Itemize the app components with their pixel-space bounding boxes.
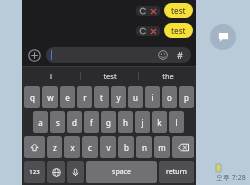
button[interactable]: x [64, 136, 80, 158]
staticText: v [106, 142, 111, 153]
staticText: f [90, 117, 93, 128]
staticText: test [171, 25, 186, 36]
button[interactable]: Shift [24, 136, 45, 158]
staticText: m [158, 142, 166, 153]
staticText: s [56, 117, 60, 128]
staticText: k [157, 117, 162, 128]
button[interactable]: Open chat bubble [210, 24, 236, 50]
staticText: the [162, 71, 174, 81]
staticText: return [166, 167, 187, 177]
button[interactable]: Add attachment [27, 48, 42, 63]
button[interactable]: Hashtag [174, 49, 186, 61]
button[interactable]: space [86, 161, 157, 183]
staticText: p [184, 92, 189, 103]
staticText: test [171, 5, 186, 16]
staticText: space [112, 167, 131, 177]
staticText: y [116, 92, 121, 103]
button[interactable]: test [164, 3, 193, 18]
button[interactable]: Emoji [157, 49, 169, 61]
button[interactable]: u [128, 86, 143, 108]
button[interactable]: b [118, 136, 134, 158]
staticText: c [88, 142, 92, 153]
staticText: h [123, 117, 128, 128]
staticText: e [65, 92, 70, 103]
staticText: test [103, 71, 117, 81]
button[interactable]: o [162, 86, 177, 108]
staticText: u [133, 92, 138, 103]
button[interactable]: n [136, 136, 152, 158]
button[interactable]: i [145, 86, 160, 108]
button[interactable]: v [100, 136, 116, 158]
button[interactable]: z [47, 136, 62, 158]
button[interactable]: d [67, 111, 82, 133]
staticText: i [151, 92, 154, 103]
button[interactable]: j [135, 111, 150, 133]
button[interactable]: m [154, 136, 170, 158]
button[interactable]: Backspace [172, 136, 194, 158]
staticText: 오후 7:28 [216, 173, 246, 183]
staticText: w [47, 92, 54, 103]
staticText: l [175, 117, 178, 128]
button[interactable]: e [60, 86, 75, 108]
staticText: g [106, 117, 111, 128]
staticText: d [72, 117, 77, 128]
button[interactable]: return [159, 161, 194, 183]
button[interactable]: y [111, 86, 126, 108]
button[interactable]: test [164, 23, 193, 38]
staticText: x [70, 142, 75, 153]
button[interactable]: i [22, 67, 80, 84]
button[interactable]: test [81, 67, 138, 84]
button[interactable]: l [169, 111, 184, 133]
staticText: j [141, 117, 144, 128]
button[interactable]: a [33, 111, 48, 133]
button[interactable]: Switch language [47, 161, 65, 183]
button[interactable]: Voice input [67, 161, 84, 183]
staticText: n [142, 142, 147, 153]
staticText: i [50, 71, 52, 81]
button[interactable]: k [152, 111, 167, 133]
button[interactable]: t [94, 86, 109, 108]
staticText: 123 [29, 168, 40, 176]
staticText: o [167, 92, 172, 103]
button[interactable]: Emoji [46, 47, 191, 63]
button[interactable]: g [101, 111, 116, 133]
staticText: a [38, 117, 43, 128]
button[interactable]: s [50, 111, 65, 133]
button[interactable]: the [139, 67, 196, 84]
staticText: # [177, 49, 183, 61]
button[interactable]: 123 [24, 161, 45, 183]
button[interactable]: w [42, 86, 58, 108]
button[interactable]: p [179, 86, 194, 108]
button[interactable]: Retry or cancel sending [136, 26, 160, 36]
button[interactable]: h [118, 111, 133, 133]
button[interactable]: c [82, 136, 98, 158]
button[interactable]: Retry or cancel sending [136, 6, 160, 16]
staticText: r [83, 92, 87, 103]
staticText: z [53, 142, 57, 153]
staticText: t [100, 92, 103, 103]
button[interactable]: r [77, 86, 92, 108]
button[interactable]: q [24, 86, 40, 108]
button[interactable]: f [84, 111, 99, 133]
staticText: b [124, 142, 129, 153]
staticText: q [30, 92, 35, 103]
